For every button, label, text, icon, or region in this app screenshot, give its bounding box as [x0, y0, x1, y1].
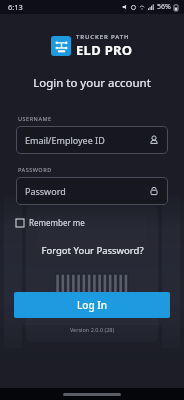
button[interactable]: Password: [16, 177, 168, 205]
staticText: Email/Employee ID: [25, 134, 149, 146]
button[interactable]: Remember me: [14, 215, 87, 230]
staticText: 6:13: [8, 2, 23, 12]
staticText: Forgot Your Password?: [41, 244, 144, 257]
staticText: PASSWORD: [18, 166, 184, 173]
staticText: Login to your account: [0, 75, 184, 91]
button[interactable]: Log In: [14, 292, 170, 318]
button[interactable]: Email/Employee ID: [16, 126, 168, 154]
staticText: Password: [25, 185, 149, 197]
staticText: Version 2.0.0 (28): [0, 326, 184, 333]
staticText: ELD PRO: [76, 41, 133, 59]
staticText: Log In: [77, 298, 108, 312]
staticText: 56%: [157, 2, 171, 12]
staticText: TRUCKER PATH: [76, 33, 130, 41]
button[interactable]: Forgot Your Password?: [0, 242, 184, 259]
staticText: Remember me: [29, 217, 85, 228]
staticText: USERNAME: [18, 115, 184, 122]
